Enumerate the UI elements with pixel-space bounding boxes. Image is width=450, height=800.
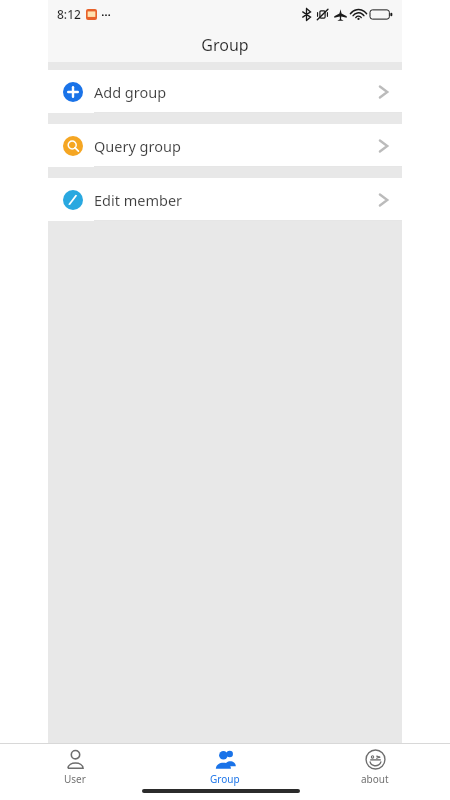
staticText: User (64, 772, 86, 786)
button[interactable]: Group (150, 744, 300, 789)
staticText: 8:12 (57, 6, 81, 22)
other: Open Add group (379, 84, 388, 100)
staticText: Edit member (94, 190, 379, 210)
other: Open Query group (379, 138, 388, 154)
button[interactable]: Edit member (48, 178, 402, 221)
button[interactable]: Query group (48, 124, 402, 167)
staticText: Group (201, 34, 249, 56)
staticText: Group (210, 772, 240, 786)
button[interactable]: User (0, 744, 150, 789)
staticText: Query group (94, 136, 379, 156)
button[interactable]: about (300, 744, 450, 789)
staticText: about (361, 772, 389, 786)
staticText: Add group (94, 82, 379, 102)
button[interactable]: Add group (48, 70, 402, 113)
other: Open Edit member (379, 192, 388, 208)
